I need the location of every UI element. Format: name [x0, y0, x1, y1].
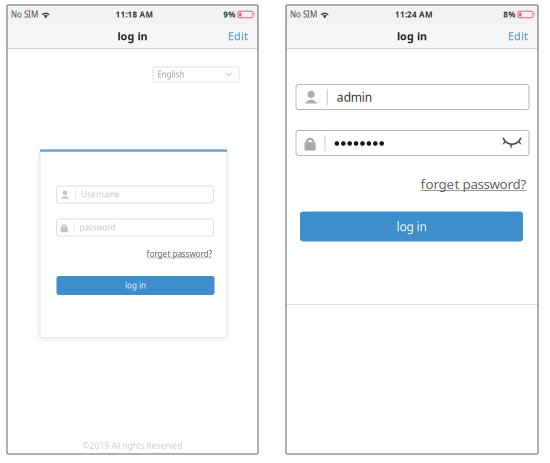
staticText: Edit [228, 29, 248, 43]
button[interactable]: forget password? [419, 174, 527, 194]
staticText: log in [397, 29, 427, 43]
button[interactable]: log in [56, 276, 214, 295]
button[interactable]: Edit [504, 25, 532, 47]
staticText: log in [396, 218, 426, 234]
staticText: 11:18 AM [115, 9, 153, 20]
button[interactable]: forget password? [145, 247, 212, 260]
staticText: forget password? [146, 248, 211, 259]
staticText: ©2019 All rights Reserved [82, 440, 182, 451]
staticText: 8% [503, 9, 515, 20]
staticText: 11:24 AM [395, 9, 433, 20]
staticText: English [157, 69, 184, 80]
staticText: admin [337, 89, 372, 105]
staticText: No SIM [11, 9, 38, 20]
staticText: Edit [508, 29, 528, 43]
button[interactable]: log in [300, 211, 523, 241]
staticText: Username [81, 189, 120, 200]
staticText: log in [125, 280, 146, 291]
button[interactable]: Edit [224, 25, 252, 47]
staticText: 9% [223, 9, 235, 20]
staticText: forget password? [420, 175, 526, 193]
staticText: log in [117, 29, 147, 43]
staticText: No SIM [290, 9, 317, 20]
staticText: password [79, 222, 115, 233]
button[interactable]: English [153, 67, 239, 82]
